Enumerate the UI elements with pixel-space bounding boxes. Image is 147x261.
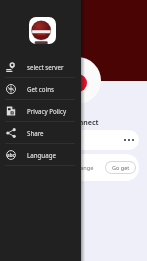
staticText: Go get <box>112 164 130 171</box>
staticText: tap to connect <box>48 118 99 128</box>
button[interactable] <box>62 130 139 150</box>
staticText: abc <box>7 152 15 158</box>
button[interactable]: Go get <box>106 162 135 173</box>
staticText: Get coins <box>27 85 54 93</box>
staticText: Share <box>27 129 44 137</box>
button[interactable]: select server <box>0 56 81 77</box>
staticText: select server <box>27 63 64 71</box>
staticText: Language <box>27 151 56 159</box>
staticText: Exchange <box>68 164 94 172</box>
button[interactable]: abc <box>0 144 81 165</box>
staticText: Privacy Policy <box>27 107 67 115</box>
button[interactable]: Get coins <box>0 78 81 99</box>
button[interactable]: Share <box>0 122 81 143</box>
button[interactable]: Connect <box>54 57 101 104</box>
button[interactable]: Privacy Policy <box>0 100 81 121</box>
